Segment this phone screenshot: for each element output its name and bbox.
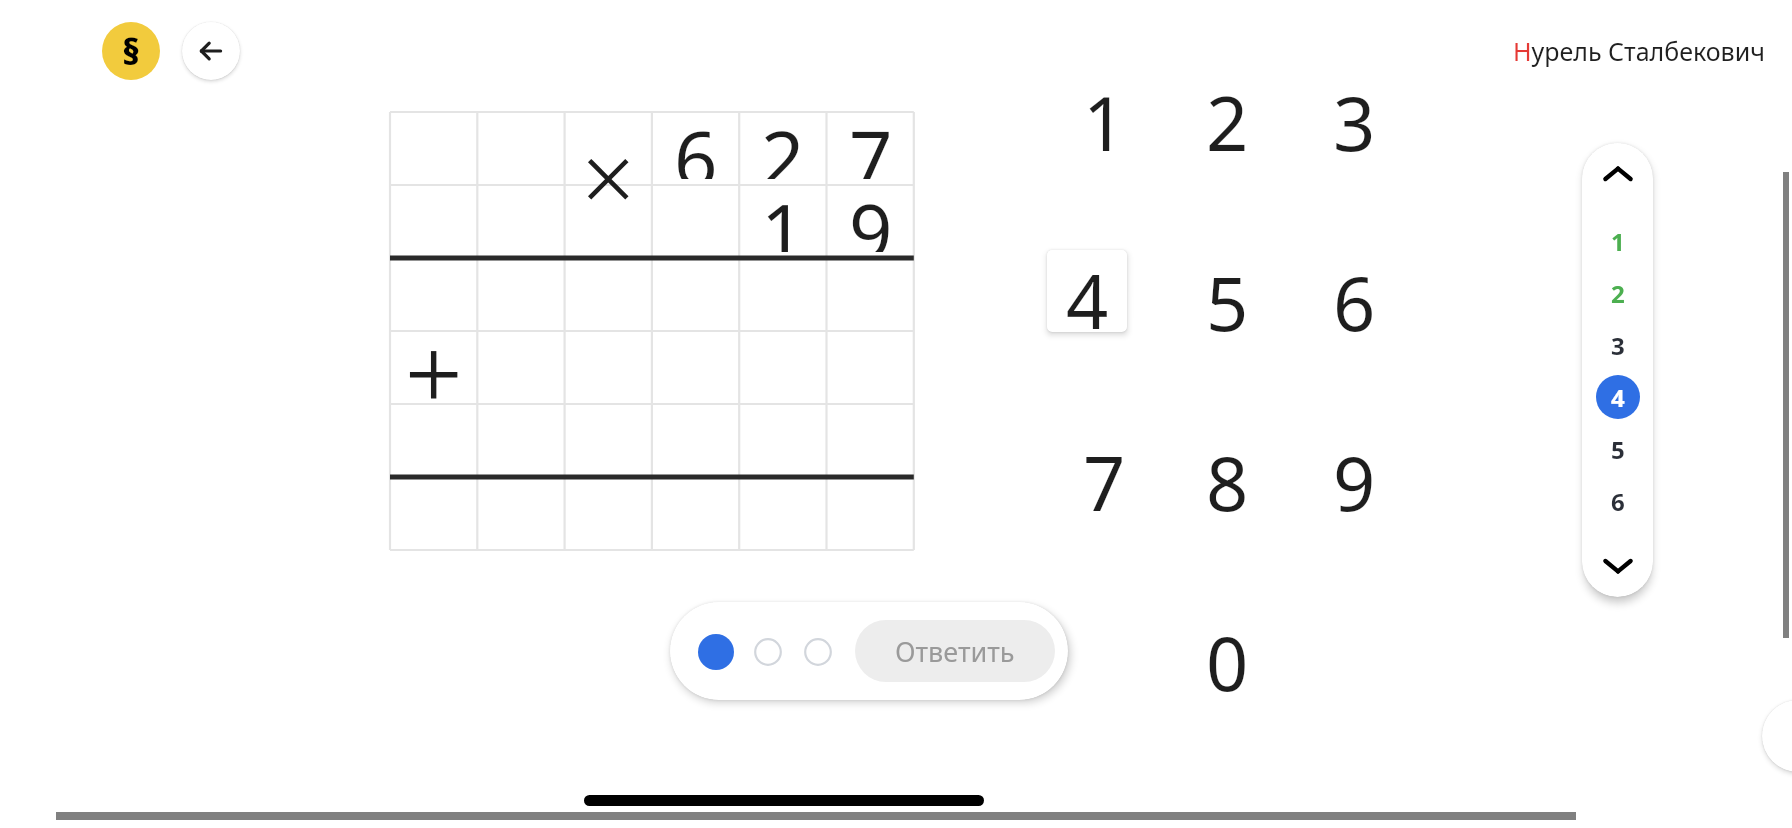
button[interactable]: Step 1 — [698, 634, 734, 670]
staticText: 4 — [1611, 381, 1625, 414]
button[interactable]: 6 — [1582, 475, 1653, 527]
button[interactable]: 7 — [827, 106, 914, 179]
staticText: 7 — [849, 106, 893, 179]
staticText: Ответить — [895, 633, 1015, 670]
button[interactable]: Ответить — [855, 620, 1055, 682]
staticText: 6 — [1611, 485, 1625, 518]
staticText: 2 — [761, 106, 805, 179]
staticText: 6 — [1333, 252, 1376, 335]
button[interactable]: Back — [182, 22, 240, 80]
button[interactable]: Scroll down — [1582, 535, 1653, 597]
button[interactable]: App logo — [102, 22, 160, 80]
button[interactable]: 4 — [1047, 250, 1127, 332]
button[interactable]: 1 — [739, 179, 826, 252]
staticText: 1 — [1083, 72, 1126, 155]
button[interactable]: Scroll up — [1582, 143, 1653, 205]
staticText: 2 — [1206, 72, 1249, 155]
button[interactable]: Нурель Сталбекович — [1513, 34, 1765, 68]
button[interactable]: 0 — [1198, 612, 1256, 695]
staticText: 1 — [1611, 225, 1625, 258]
staticText: 0 — [1206, 612, 1249, 695]
staticText: § — [122, 27, 140, 76]
staticText: Нурель Сталбекович — [1513, 34, 1765, 68]
button[interactable]: 7 — [1075, 432, 1133, 515]
button[interactable]: Step 2 — [754, 638, 782, 666]
button[interactable]: 3 — [1582, 319, 1653, 371]
button[interactable]: 8 — [1198, 432, 1256, 515]
button[interactable]: 5 — [1198, 252, 1256, 335]
button[interactable]: 2 — [739, 106, 826, 179]
button[interactable]: 5 — [1582, 423, 1653, 475]
button[interactable]: 9 — [827, 179, 914, 252]
staticText: 3 — [1611, 329, 1625, 362]
staticText: 1 — [761, 179, 805, 252]
staticText: 5 — [1206, 252, 1249, 335]
button[interactable]: 2 — [1582, 267, 1653, 319]
staticText: 3 — [1333, 72, 1376, 155]
button[interactable]: 1 — [1075, 72, 1133, 155]
staticText: 8 — [1206, 432, 1249, 515]
button[interactable]: 4 — [1582, 371, 1653, 423]
button[interactable]: 6 — [652, 106, 739, 179]
staticText: 7 — [1083, 432, 1126, 515]
button[interactable]: 3 — [1325, 72, 1383, 155]
button[interactable]: 2 — [1198, 72, 1256, 155]
staticText: 2 — [1611, 277, 1625, 310]
staticText: 5 — [1611, 433, 1625, 466]
button[interactable]: Step 3 — [804, 638, 832, 666]
staticText: 6 — [674, 106, 718, 179]
button[interactable]: More — [1762, 700, 1792, 772]
button[interactable]: 9 — [1325, 432, 1383, 515]
staticText: 9 — [1333, 432, 1376, 515]
staticText: 4 — [1066, 250, 1109, 332]
staticText: 9 — [849, 179, 893, 252]
button[interactable]: 6 — [1325, 252, 1383, 335]
button[interactable]: 1 — [1582, 215, 1653, 267]
